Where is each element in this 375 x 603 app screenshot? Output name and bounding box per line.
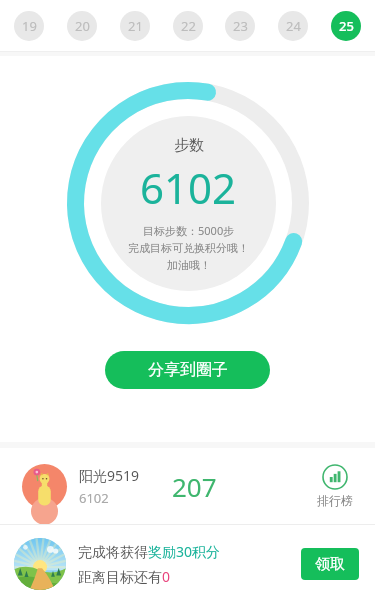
staticText: 领取 [315,555,345,574]
button[interactable]: 22 [173,11,203,41]
button[interactable]: 分享到圈子 [105,351,270,389]
button[interactable]: 21 [120,11,150,41]
staticText: 排行榜 [317,493,353,508]
staticText: 完成将获得奖励30积分 [78,542,221,561]
staticText: 分享到圈子 [148,360,228,380]
staticText: 24 [286,17,301,35]
button[interactable]: 20 [67,11,97,41]
staticText: 21 [128,17,143,35]
staticText: 目标步数：5000步 [143,223,235,238]
staticText: 距离目标还有0 [78,567,171,586]
staticText: 完成目标可兑换积分哦！ [128,241,249,255]
staticText: 阳光9519 [79,466,140,485]
button[interactable]: 排行榜 [313,460,357,512]
staticText: 20 [75,17,90,35]
staticText: 加油哦！ [167,258,211,272]
button[interactable]: 25 [331,11,361,41]
button[interactable]: 领取 [301,548,359,580]
staticText: 步数 [174,136,204,155]
button[interactable]: 24 [278,11,308,41]
staticText: 6102 [79,489,109,507]
button[interactable]: 阳光9519 [0,448,375,524]
staticText: 207 [172,469,217,504]
staticText: 22 [181,17,196,35]
staticText: 23 [233,17,248,35]
button[interactable]: 23 [225,11,255,41]
button[interactable]: 19 [14,11,44,41]
staticText: 19 [22,17,37,35]
staticText: 6102 [140,159,237,216]
staticText: 25 [339,17,354,35]
